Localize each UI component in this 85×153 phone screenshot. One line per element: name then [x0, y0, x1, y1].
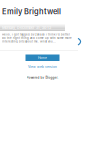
- staticText: View web version: [28, 65, 57, 69]
- staticText: do the right thing and come up with some…: [2, 36, 72, 40]
- button[interactable]: Home: [25, 54, 59, 61]
- staticText: Emily Brightwell: [2, 7, 61, 16]
- button[interactable]: View web version: [28, 65, 57, 69]
- staticText: Monday, December 31, 2012: [2, 25, 51, 30]
- staticText: Powered by Blogger.: [26, 76, 58, 79]
- staticText: Hello, I got tagged by Zana so I think I…: [2, 33, 70, 36]
- staticText: Home: [38, 56, 47, 60]
- button[interactable]: Read more: [75, 36, 83, 47]
- staticText: interesting bits about me. What you...: [2, 40, 56, 43]
